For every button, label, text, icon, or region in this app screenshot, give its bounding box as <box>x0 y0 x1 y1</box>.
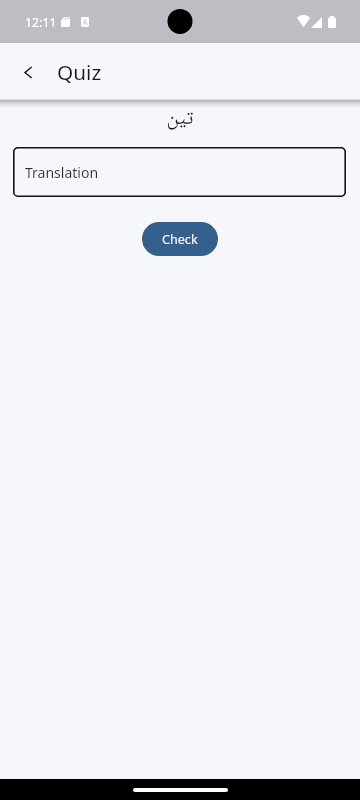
staticText: Translation <box>25 163 99 182</box>
button[interactable]: Back <box>12 56 44 88</box>
button[interactable]: Translation <box>13 147 346 197</box>
staticText: Check <box>162 231 198 248</box>
button[interactable]: Check <box>142 222 218 256</box>
staticText: Quiz <box>57 58 102 86</box>
staticText: 12:11 <box>25 14 57 31</box>
staticText: تين <box>0 102 360 138</box>
